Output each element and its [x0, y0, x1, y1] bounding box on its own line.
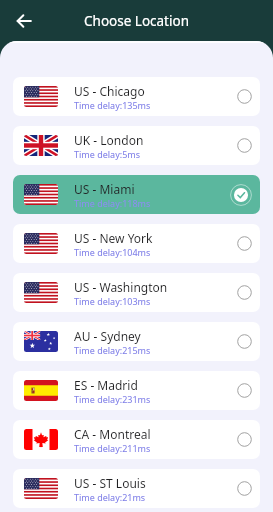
staticText: AU - Sydney	[74, 328, 141, 344]
staticText: US - ST Louis	[74, 475, 146, 491]
staticText: Time delay:135ms	[74, 99, 151, 111]
button[interactable]: US - Washington	[13, 273, 260, 312]
staticText: Choose Location	[84, 12, 189, 30]
button[interactable]: US - Chicago	[13, 77, 260, 116]
staticText: Time delay:215ms	[74, 344, 151, 356]
staticText: US - Washington	[74, 279, 168, 295]
staticText: Time delay:5ms	[74, 148, 141, 160]
staticText: US - Miami	[74, 181, 135, 197]
staticText: CA - Montreal	[74, 426, 151, 442]
button[interactable]: ES - Madrid	[13, 371, 260, 410]
button[interactable]: US - ST Louis	[13, 469, 260, 508]
staticText: Time delay:103ms	[74, 295, 151, 307]
staticText: Time delay:231ms	[74, 393, 151, 405]
staticText: ES - Madrid	[74, 377, 138, 393]
button[interactable]: US - New York	[13, 224, 260, 263]
button[interactable]: CA - Montreal	[13, 420, 260, 459]
staticText: Time delay:104ms	[74, 246, 151, 258]
staticText: US - Chicago	[74, 83, 145, 99]
staticText: US - New York	[74, 230, 153, 246]
staticText: Time delay:21ms	[74, 491, 146, 503]
button[interactable]: US - Miami	[13, 175, 260, 214]
button[interactable]: Back	[11, 8, 37, 34]
button[interactable]: AU - Sydney	[13, 322, 260, 361]
staticText: Time delay:211ms	[74, 442, 151, 454]
button[interactable]: UK - London	[13, 126, 260, 165]
staticText: Time delay:118ms	[74, 197, 151, 209]
staticText: UK - London	[74, 132, 144, 148]
